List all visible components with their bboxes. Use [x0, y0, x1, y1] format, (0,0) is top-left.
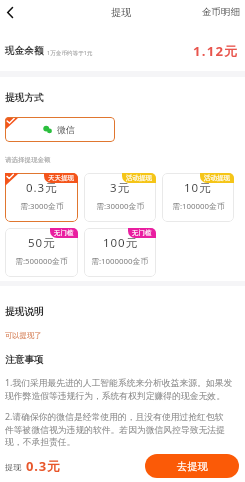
staticText: 提现	[111, 6, 131, 19]
button[interactable]: 50元	[5, 228, 78, 277]
button[interactable]: 金币明细	[202, 6, 240, 18]
staticText: 无门槛	[132, 229, 152, 237]
button[interactable]: Back	[0, 0, 19, 24]
staticText: 1.我们采用最先进的人工智能系统来分析收益来源。如果发 现作弊造假等违规行为，系…	[5, 377, 233, 402]
button[interactable]: 100元	[84, 228, 156, 277]
button[interactable]: 去提现	[145, 454, 239, 478]
staticText: 无门槛	[54, 229, 74, 237]
staticText: 1.12元	[193, 42, 239, 60]
staticText: 需:30000金币	[96, 201, 145, 212]
staticText: 0.3元	[26, 180, 58, 196]
staticText: 请选择提现金额	[5, 156, 51, 164]
staticText: 50元	[28, 235, 56, 251]
staticText: 可以提现了	[5, 331, 42, 340]
button[interactable]: 0.3元	[5, 173, 78, 222]
staticText: 注意事项	[5, 354, 44, 366]
staticText: 金币明细	[202, 6, 240, 18]
staticText: 活动提现	[126, 174, 152, 182]
staticText: 2.请确保你的微信是经常使用的，且没有使用过抢红包软 件等被微信视为违规的软件。…	[5, 411, 225, 448]
staticText: 1万金币约等于1元	[47, 49, 93, 57]
staticText: 提现方式	[5, 92, 44, 104]
button[interactable]: 10元	[162, 173, 234, 222]
staticText: 现金余额	[5, 45, 44, 57]
staticText: 活动提现	[204, 174, 230, 182]
button[interactable]: 3元	[84, 173, 156, 222]
staticText: 天天提现	[48, 174, 74, 182]
staticText: 3元	[110, 180, 130, 196]
staticText: 需:3000金币	[20, 201, 64, 212]
staticText: 10元	[184, 180, 212, 196]
button[interactable]: 微信	[5, 117, 115, 142]
staticText: 微信	[57, 124, 75, 135]
staticText: 提现	[5, 462, 22, 472]
staticText: 0.3元	[26, 457, 61, 475]
staticText: 需:100000金币	[172, 201, 225, 212]
staticText: 去提现	[177, 460, 208, 473]
staticText: 100元	[103, 235, 138, 251]
staticText: 需:1000000金币	[91, 256, 149, 267]
staticText: 需:500000金币	[15, 256, 68, 267]
staticText: 提现说明	[5, 306, 44, 318]
